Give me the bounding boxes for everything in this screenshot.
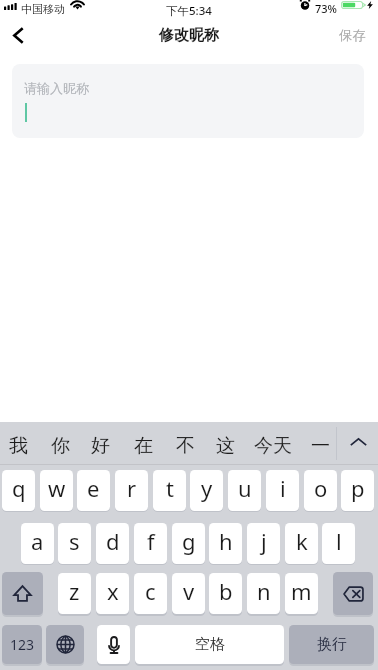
staticText: w — [48, 473, 66, 503]
button[interactable]: o — [304, 470, 337, 511]
staticText: 一 — [311, 434, 330, 458]
staticText: b — [219, 576, 233, 606]
button[interactable]: 保存 — [339, 27, 366, 44]
staticText: 下午5:34 — [166, 3, 212, 19]
staticText: 中国移动 — [21, 2, 65, 16]
staticText: 123 — [10, 635, 35, 654]
staticText: t — [166, 473, 174, 503]
staticText: i — [280, 473, 286, 503]
staticText: 这 — [216, 434, 235, 458]
button[interactable]: 123 — [2, 625, 42, 664]
button[interactable]: Voice input — [97, 625, 130, 664]
staticText: v — [183, 576, 195, 606]
button[interactable]: Backspace — [333, 572, 373, 615]
button[interactable]: 不 — [172, 428, 198, 463]
staticText: 你 — [51, 434, 70, 458]
button[interactable]: h — [209, 523, 242, 564]
staticText: h — [219, 526, 233, 556]
button[interactable]: 这 — [212, 428, 238, 463]
button[interactable]: j — [247, 523, 280, 564]
staticText: 好 — [91, 434, 110, 458]
button[interactable]: q — [2, 470, 35, 511]
button[interactable]: n — [247, 573, 280, 614]
button[interactable]: b — [209, 573, 242, 614]
staticText: s — [69, 526, 80, 556]
button[interactable]: Back — [0, 22, 36, 49]
staticText: 在 — [134, 434, 153, 458]
staticText: r — [127, 473, 137, 503]
staticText: x — [107, 576, 119, 606]
staticText: j — [261, 526, 267, 556]
button[interactable]: z — [58, 573, 91, 614]
button[interactable]: c — [134, 573, 167, 614]
staticText: 我 — [9, 434, 28, 458]
staticText: 修改昵称 — [159, 26, 219, 45]
button[interactable]: d — [96, 523, 129, 564]
button[interactable]: l — [322, 523, 355, 564]
button[interactable]: i — [266, 470, 299, 511]
button[interactable]: 请输入昵称 — [12, 64, 364, 138]
button[interactable]: 好 — [87, 428, 113, 463]
staticText: 换行 — [317, 635, 347, 654]
button[interactable]: y — [190, 470, 223, 511]
staticText: 今天 — [254, 434, 292, 458]
button[interactable]: w — [40, 470, 73, 511]
button[interactable]: g — [172, 523, 205, 564]
button[interactable]: u — [228, 470, 261, 511]
button[interactable]: 一 — [307, 428, 333, 463]
button[interactable]: 在 — [130, 428, 156, 463]
staticText: 73% — [315, 1, 337, 16]
button[interactable]: x — [96, 573, 129, 614]
staticText: k — [296, 526, 308, 556]
staticText: c — [145, 576, 156, 606]
staticText: 不 — [176, 434, 195, 458]
staticText: y — [201, 473, 213, 503]
button[interactable]: 换行 — [289, 625, 374, 664]
staticText: z — [69, 576, 80, 606]
button[interactable]: 你 — [47, 428, 73, 463]
staticText: 请输入昵称 — [24, 80, 89, 96]
button[interactable]: 今天 — [253, 428, 293, 463]
button[interactable]: 我 — [5, 428, 31, 463]
staticText: f — [147, 526, 155, 556]
staticText: p — [351, 473, 365, 503]
staticText: u — [238, 473, 252, 503]
staticText: l — [336, 526, 342, 556]
staticText: 空格 — [195, 635, 225, 654]
button[interactable]: p — [341, 470, 374, 511]
button[interactable]: f — [134, 523, 167, 564]
button[interactable]: t — [153, 470, 186, 511]
button[interactable]: Switch language — [46, 625, 84, 664]
staticText: m — [291, 576, 312, 606]
button[interactable]: Expand candidates — [339, 424, 377, 459]
button[interactable]: e — [77, 470, 110, 511]
button[interactable]: Shift — [2, 572, 43, 615]
staticText: a — [31, 526, 44, 556]
button[interactable]: r — [115, 470, 148, 511]
staticText: e — [87, 473, 100, 503]
staticText: 保存 — [339, 27, 366, 44]
button[interactable]: v — [172, 573, 205, 614]
staticText: n — [257, 576, 271, 606]
button[interactable]: k — [285, 523, 318, 564]
button[interactable]: a — [21, 523, 54, 564]
staticText: o — [314, 473, 328, 503]
staticText: g — [182, 526, 196, 556]
staticText: q — [12, 473, 26, 503]
button[interactable]: 空格 — [135, 625, 284, 664]
button[interactable]: m — [285, 573, 318, 614]
button[interactable]: s — [58, 523, 91, 564]
staticText: d — [106, 526, 120, 556]
